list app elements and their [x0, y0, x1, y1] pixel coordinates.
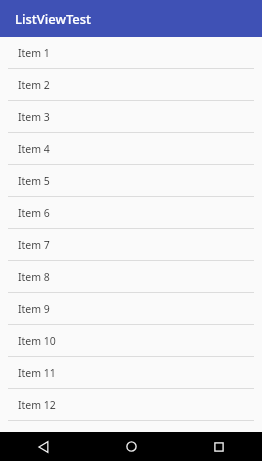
button[interactable]: Item 12: [0, 389, 262, 420]
staticText: Item 10: [18, 334, 56, 348]
button[interactable]: Item 4: [0, 133, 262, 164]
button[interactable]: Item 5: [0, 165, 262, 196]
button[interactable]: Item 9: [0, 293, 262, 324]
button[interactable]: Item 10: [0, 325, 262, 356]
staticText: Item 5: [18, 174, 50, 188]
staticText: Item 11: [18, 366, 56, 380]
staticText: Item 7: [18, 238, 50, 252]
button[interactable]: Item 7: [0, 229, 262, 260]
staticText: Item 4: [18, 142, 50, 156]
button[interactable]: Item 11: [0, 357, 262, 388]
staticText: Item 8: [18, 270, 50, 284]
staticText: Item 2: [18, 78, 50, 92]
button[interactable]: Item 1: [0, 37, 262, 68]
staticText: Item 1: [18, 46, 50, 60]
button[interactable]: Home: [88, 432, 175, 461]
staticText: Item 3: [18, 110, 50, 124]
staticText: Item 9: [18, 302, 50, 316]
staticText: ListViewTest: [15, 10, 92, 28]
staticText: Item 12: [18, 398, 56, 412]
button[interactable]: Recent apps: [175, 432, 262, 461]
button[interactable]: Back: [0, 432, 88, 461]
staticText: Item 6: [18, 206, 50, 220]
button[interactable]: Item 6: [0, 197, 262, 228]
button[interactable]: Item 3: [0, 101, 262, 132]
button[interactable]: Item 8: [0, 261, 262, 292]
button[interactable]: Item 2: [0, 69, 262, 100]
